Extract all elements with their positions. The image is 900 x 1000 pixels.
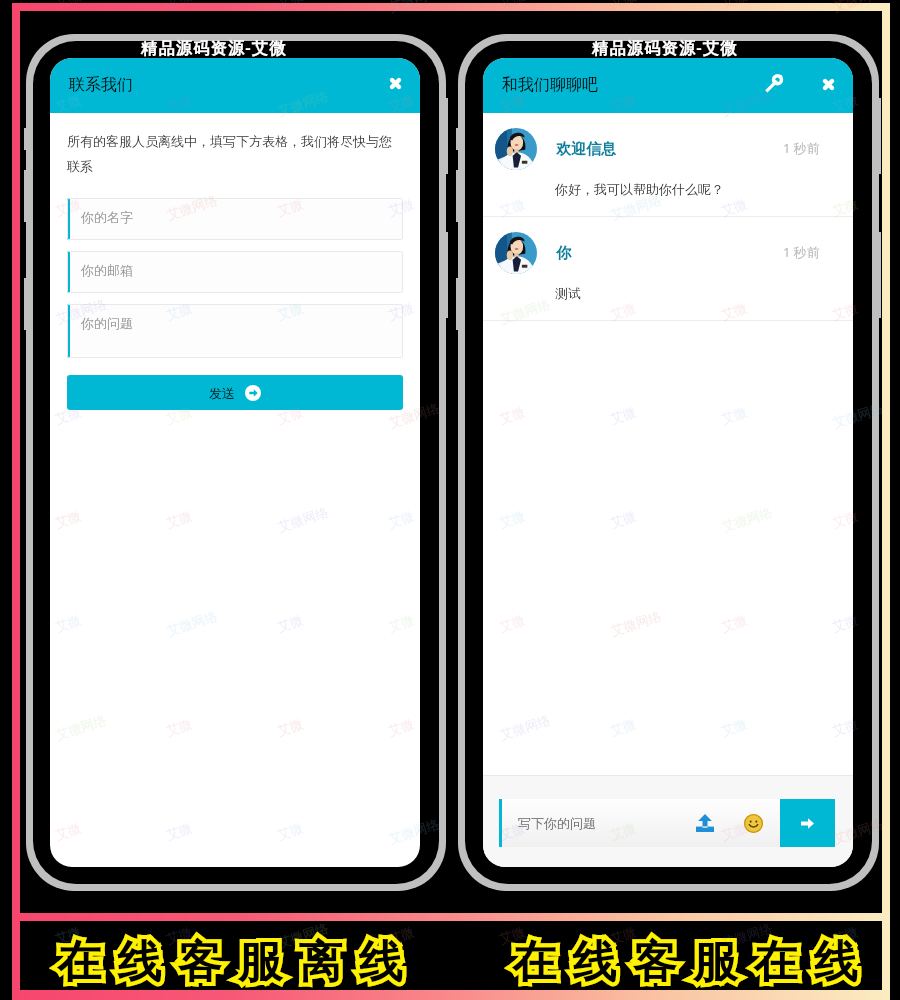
staticText: 艾微网络 <box>276 919 330 951</box>
staticText: 联系我们 <box>69 75 133 95</box>
staticText: 艾微 <box>830 507 860 531</box>
staticText: 艾微 <box>608 0 638 11</box>
staticText: 艾微网络 <box>165 607 219 639</box>
staticText: 艾微 <box>53 819 83 843</box>
staticText: 艾微 <box>830 299 860 323</box>
staticText: 精品源码资源-艾微 <box>592 37 738 59</box>
staticText: 艾微 <box>608 507 638 531</box>
button[interactable]: 你的问题 <box>67 304 403 358</box>
staticText: 1 秒前 <box>783 243 820 261</box>
staticText: 艾微 <box>497 403 527 427</box>
staticText: 艾微 <box>497 611 527 635</box>
staticText: 艾微 <box>386 923 416 947</box>
staticText: 艾微 <box>386 715 416 739</box>
staticText: 艾微 <box>275 195 305 219</box>
staticText: 艾微网络 <box>831 0 885 15</box>
staticText: 艾微网络 <box>387 399 441 431</box>
staticText: 艾微 <box>164 91 194 115</box>
staticText: 艾微 <box>608 403 638 427</box>
staticText: 艾微网络 <box>609 607 663 639</box>
staticText: 艾微 <box>275 403 305 427</box>
staticText: 艾微 <box>275 299 305 323</box>
staticText: 艾微网络 <box>276 87 330 119</box>
staticText: 艾微 <box>497 195 527 219</box>
staticText: 艾微 <box>53 195 83 219</box>
staticText: 艾微 <box>275 0 305 11</box>
staticText: 艾微网络 <box>387 0 441 15</box>
button[interactable]: 欢迎信息 <box>483 113 853 217</box>
staticText: 你 <box>556 244 571 263</box>
staticText: 艾微 <box>830 91 860 115</box>
staticText: 艾微 <box>830 195 860 219</box>
staticText: 艾微 <box>386 91 416 115</box>
button[interactable]: 发送 <box>67 375 403 410</box>
button[interactable]: 关闭 <box>814 70 842 98</box>
staticText: 所有的客服人员离线中，填写下方表格，我们将尽快与您联系 <box>67 133 403 175</box>
staticText: 艾微 <box>719 195 749 219</box>
staticText: 艾微 <box>53 611 83 635</box>
staticText: 你的邮箱 <box>81 262 133 278</box>
staticText: 艾微网络 <box>609 191 663 223</box>
staticText: 艾微网络 <box>387 815 441 847</box>
button[interactable]: 设置 <box>759 69 787 97</box>
staticText: 艾微 <box>386 299 416 323</box>
staticText: 艾微 <box>719 715 749 739</box>
button[interactable]: 关闭 <box>381 69 409 97</box>
staticText: 精品源码资源-艾微 <box>141 37 287 59</box>
staticText: 艾微 <box>164 299 194 323</box>
staticText: 在线客服离线 <box>57 935 419 990</box>
button[interactable]: 发送 <box>780 799 835 847</box>
staticText: 艾微 <box>830 611 860 635</box>
staticText: 在线客服离线 <box>57 935 419 990</box>
staticText: 艾微 <box>386 611 416 635</box>
staticText: 发送 <box>209 385 235 401</box>
staticText: 艾微网络 <box>720 919 774 951</box>
staticText: 艾微 <box>719 819 749 843</box>
button[interactable]: 你的名字 <box>67 198 403 240</box>
staticText: 艾微 <box>164 403 194 427</box>
staticText: 艾微 <box>275 715 305 739</box>
button[interactable]: 写下你的问题 <box>499 799 780 847</box>
staticText: 艾微 <box>719 611 749 635</box>
staticText: 欢迎信息 <box>556 140 616 159</box>
staticText: 艾微网络 <box>831 815 885 847</box>
staticText: 艾微网络 <box>831 399 885 431</box>
staticText: 你的问题 <box>81 315 133 331</box>
staticText: 和我们聊聊吧 <box>502 75 598 95</box>
staticText: 艾微 <box>53 0 83 11</box>
button[interactable]: 你的邮箱 <box>67 251 403 293</box>
staticText: 艾微 <box>497 923 527 947</box>
staticText: 艾微 <box>719 0 749 11</box>
button[interactable]: 你 <box>483 217 853 321</box>
staticText: 艾微 <box>164 715 194 739</box>
staticText: 艾微网络 <box>54 711 108 743</box>
button[interactable]: 表情 <box>738 808 768 838</box>
staticText: 艾微 <box>164 923 194 947</box>
staticText: 艾微 <box>608 91 638 115</box>
staticText: 写下你的问题 <box>518 815 596 831</box>
staticText: 艾微网络 <box>54 295 108 327</box>
staticText: 艾微 <box>830 715 860 739</box>
staticText: 你的名字 <box>81 209 133 225</box>
staticText: 艾微 <box>608 715 638 739</box>
staticText: 艾微 <box>53 923 83 947</box>
staticText: 艾微 <box>164 819 194 843</box>
staticText: 艾微 <box>386 507 416 531</box>
staticText: 艾微 <box>164 507 194 531</box>
staticText: 艾微 <box>719 403 749 427</box>
staticText: 艾微 <box>608 923 638 947</box>
button[interactable]: 上传文件 <box>690 808 720 838</box>
staticText: 1 秒前 <box>783 139 820 157</box>
staticText: 艾微 <box>497 819 527 843</box>
staticText: 你好，我可以帮助你什么呢？ <box>555 181 724 197</box>
staticText: 艾微网络 <box>720 87 774 119</box>
staticText: 艾微 <box>608 819 638 843</box>
staticText: 在线客服在线 <box>512 935 874 990</box>
staticText: 在线客服在线 <box>512 935 874 990</box>
staticText: 艾微 <box>608 299 638 323</box>
staticText: 艾微 <box>497 0 527 11</box>
staticText: 艾微 <box>719 299 749 323</box>
staticText: 艾微 <box>275 611 305 635</box>
staticText: 艾微 <box>275 819 305 843</box>
staticText: 艾微网络 <box>498 295 552 327</box>
